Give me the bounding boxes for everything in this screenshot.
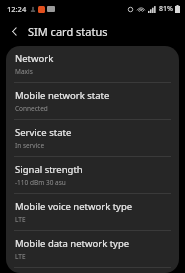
staticText: LTE	[15, 252, 26, 261]
button[interactable]: Mobile network state	[6, 83, 179, 119]
staticText: -110 dBm 30 asu	[15, 178, 66, 187]
staticText: Connected	[15, 104, 48, 113]
staticText: Mobile data network type	[15, 237, 130, 250]
staticText: Network	[15, 52, 54, 65]
button[interactable]: Service state	[6, 120, 179, 156]
button[interactable]: Signal strength	[6, 157, 179, 193]
button[interactable]: Network	[6, 46, 179, 82]
button[interactable]: Back	[4, 21, 24, 41]
staticText: Mobile network state	[15, 89, 110, 102]
button[interactable]: Mobile data network type	[6, 231, 179, 267]
staticText: 12:24	[7, 4, 27, 14]
button[interactable]: Roaming	[6, 268, 179, 273]
staticText: SIM card status	[28, 24, 108, 39]
staticText: Signal strength	[15, 163, 83, 176]
staticText: Maxis	[15, 67, 33, 76]
staticText: Mobile voice network type	[15, 200, 133, 213]
staticText: In service	[15, 141, 45, 150]
staticText: Service state	[15, 126, 72, 139]
staticText: LTE	[15, 215, 26, 224]
button[interactable]: Mobile voice network type	[6, 194, 179, 230]
staticText: 81%	[159, 4, 173, 14]
